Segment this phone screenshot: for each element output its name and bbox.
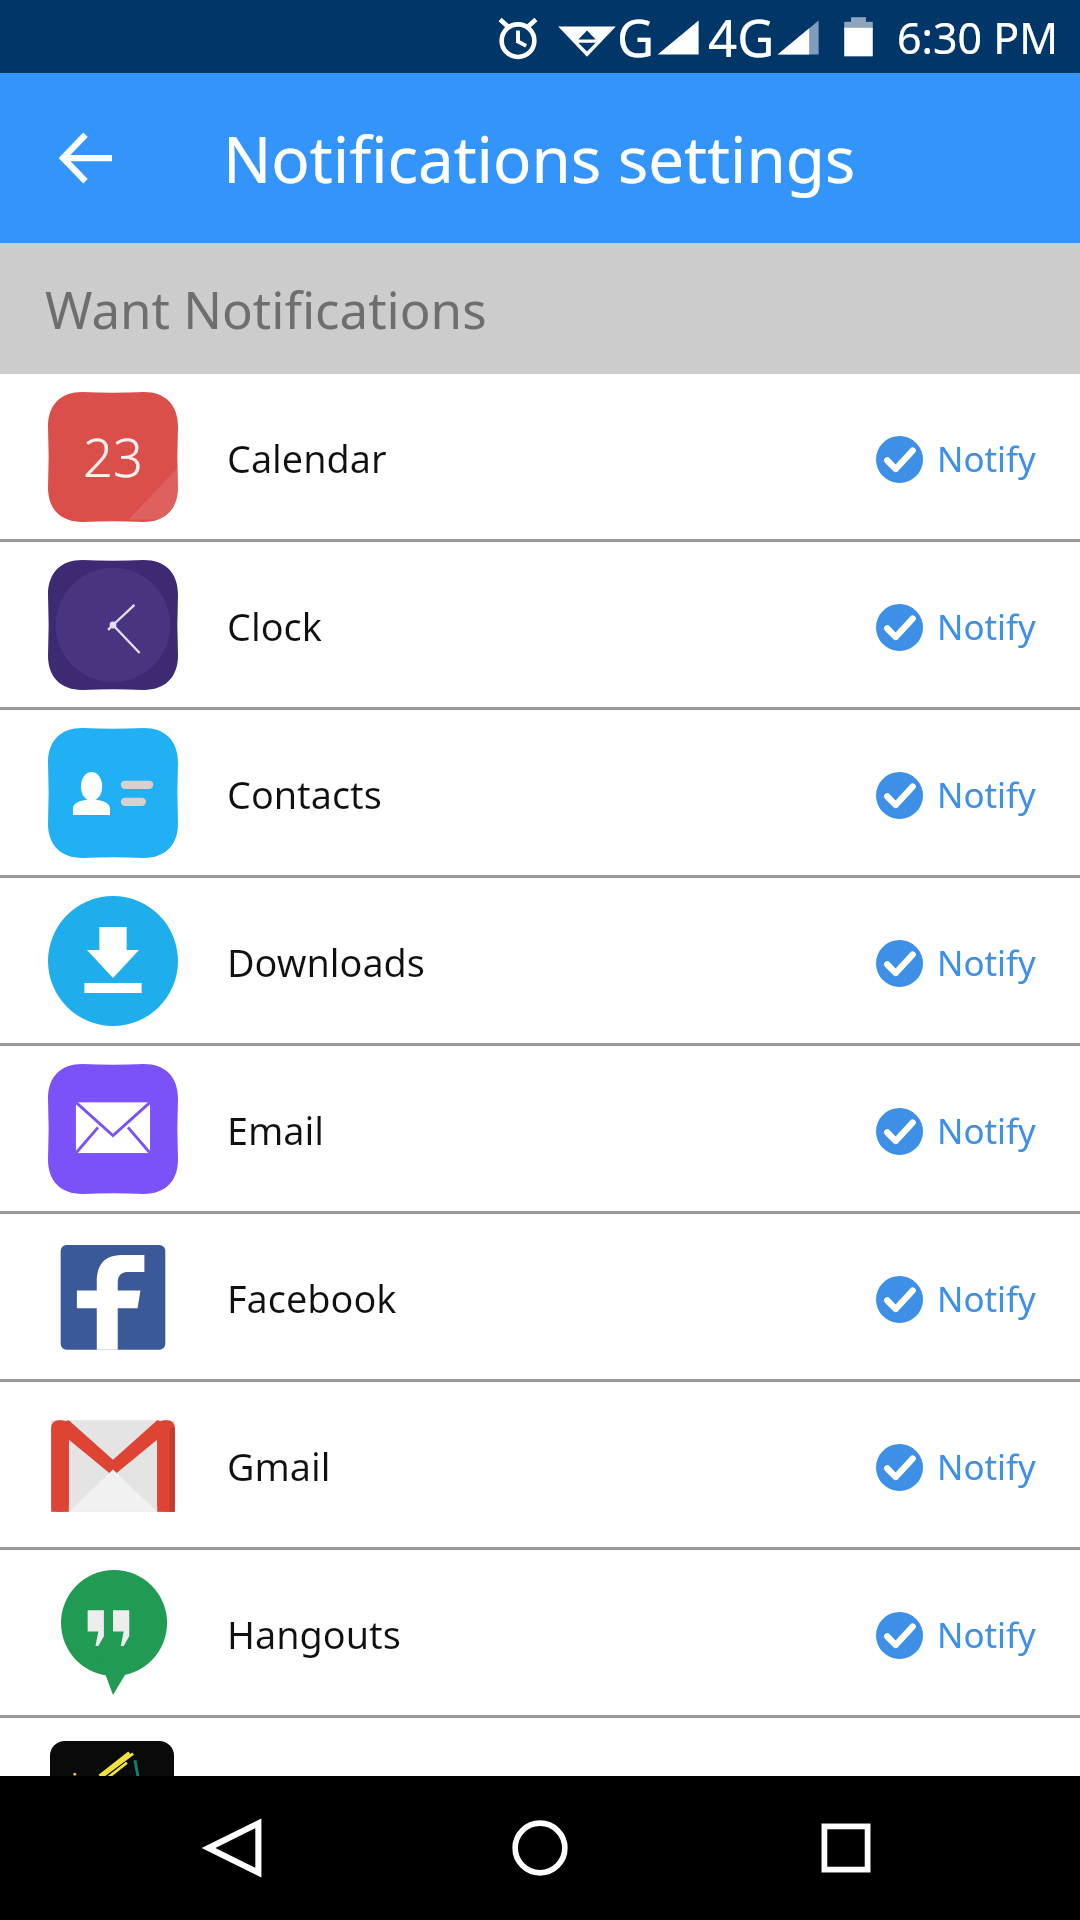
staticText: Notify	[937, 603, 1036, 650]
button[interactable]: Email	[0, 1046, 1080, 1211]
staticText: Notify	[937, 939, 1036, 986]
button[interactable]: Notify	[876, 1046, 1036, 1211]
staticText: Notifications settings	[223, 115, 856, 202]
staticText: 23	[83, 421, 143, 493]
staticText: G	[617, 2, 655, 71]
button[interactable]: Clock	[0, 542, 1080, 707]
staticText: Hangouts	[227, 1609, 401, 1660]
staticText: Notify	[937, 1275, 1036, 1322]
button[interactable]: Notify	[876, 374, 1036, 539]
staticText: Clock	[227, 601, 322, 652]
button[interactable]: 23	[0, 374, 1080, 539]
button[interactable]: Notify	[876, 878, 1036, 1043]
staticText: Notify	[937, 771, 1036, 818]
staticText: Notify	[937, 1443, 1036, 1490]
button[interactable]: Facebook	[0, 1214, 1080, 1379]
staticText: Calendar	[227, 433, 387, 484]
button[interactable]: Notify	[876, 1550, 1036, 1715]
button[interactable]: Home	[468, 1776, 612, 1920]
button[interactable]: Notify	[876, 1382, 1036, 1547]
staticText: Downloads	[227, 937, 425, 988]
staticText: Notify	[937, 1107, 1036, 1154]
button[interactable]: Notify	[876, 542, 1036, 707]
staticText: Notify	[937, 435, 1036, 482]
button[interactable]: Back	[162, 1776, 306, 1920]
button[interactable]: Notify	[876, 710, 1036, 875]
staticText: Want Notifications	[45, 274, 487, 343]
button[interactable]: Notify	[876, 1214, 1036, 1379]
button[interactable]: Recent apps	[774, 1776, 918, 1920]
staticText: Email	[227, 1105, 325, 1156]
staticText: 6:30 PM	[897, 8, 1059, 66]
button[interactable]: Downloads	[0, 878, 1080, 1043]
staticText: Notify	[937, 1611, 1036, 1658]
button[interactable]: Gmail	[0, 1382, 1080, 1547]
staticText: Contacts	[227, 769, 382, 820]
button[interactable]: Back	[9, 80, 165, 236]
staticText: Facebook	[227, 1273, 397, 1324]
button[interactable]: Contacts	[0, 710, 1080, 875]
button[interactable]: Hangouts	[0, 1550, 1080, 1715]
staticText: 4G	[708, 2, 775, 71]
staticText: Gmail	[227, 1441, 331, 1492]
